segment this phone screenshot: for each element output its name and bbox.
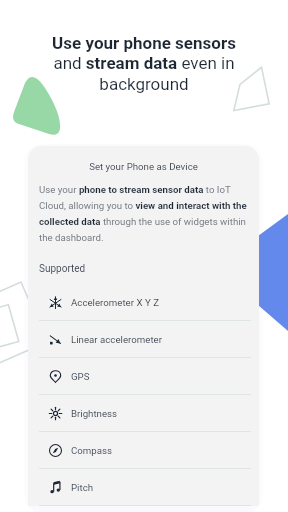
staticText: Use your phone sensors and stream data e… [20, 33, 268, 95]
button[interactable]: Brightness [28, 395, 259, 432]
staticText: Pitch [71, 482, 94, 493]
staticText: Linear accelerometer [71, 334, 162, 345]
button[interactable]: Compass [28, 432, 259, 469]
button[interactable]: GPS [28, 358, 259, 395]
button[interactable]: Linear accelerometer [28, 321, 259, 358]
staticText: Accelerometer X Y Z [71, 297, 159, 308]
button[interactable]: Accelerometer X Y Z [28, 284, 259, 321]
staticText: Brightness [71, 408, 118, 419]
staticText: Supported [39, 263, 86, 275]
button[interactable]: Pitch [28, 469, 259, 506]
staticText: GPS [71, 371, 90, 382]
staticText: Compass [71, 445, 113, 456]
staticText: Set your Phone as Device [28, 161, 259, 172]
staticText: Use your phone to stream sensor data to … [39, 184, 249, 243]
